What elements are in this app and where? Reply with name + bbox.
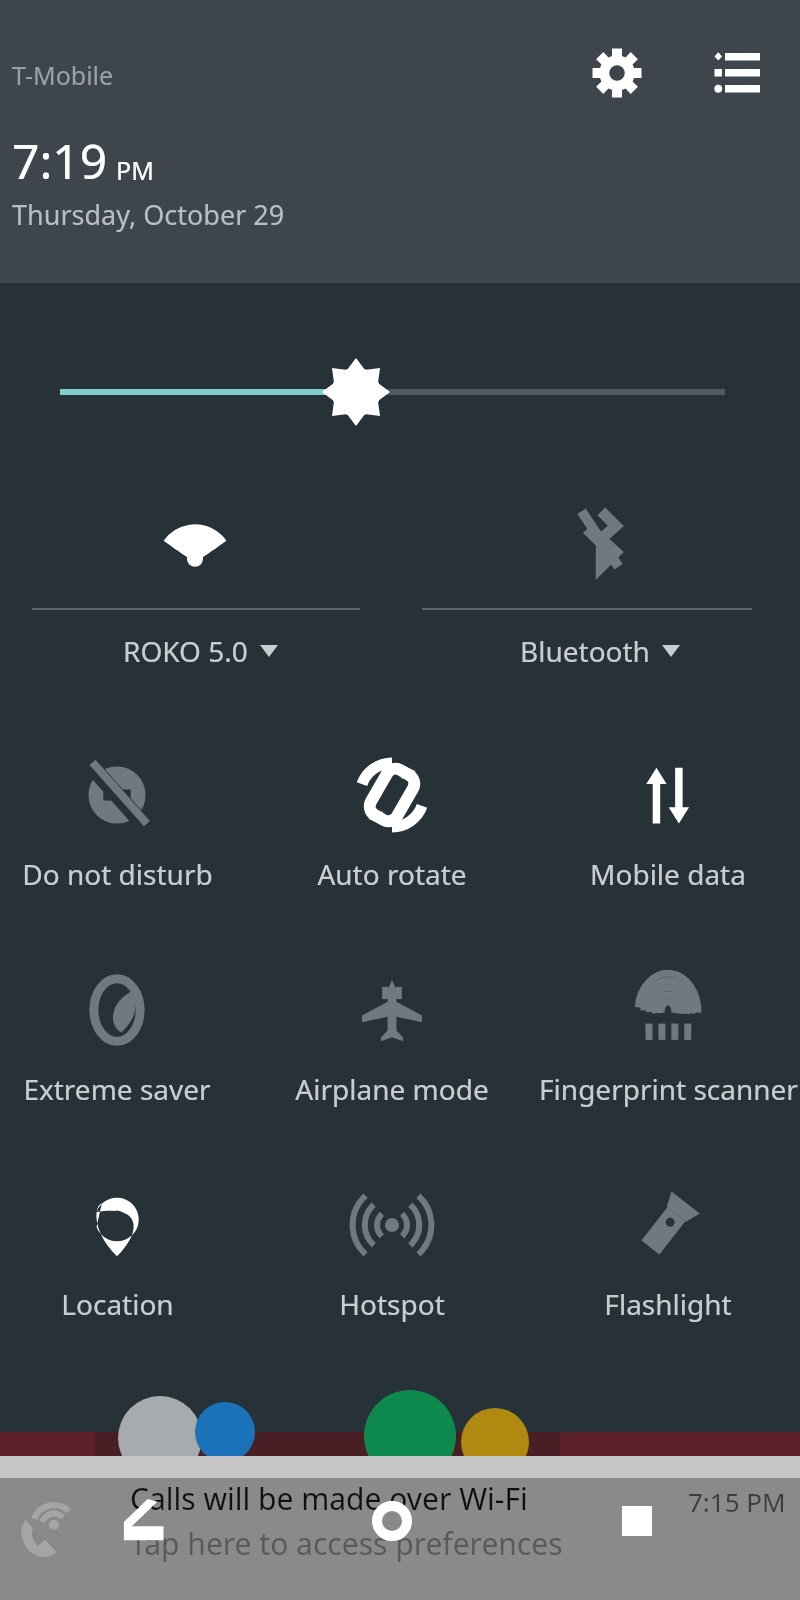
button[interactable]: Fingerprint scanner — [535, 960, 800, 1160]
staticText: Extreme saver — [23, 1070, 211, 1108]
button[interactable]: Home — [357, 1486, 427, 1556]
button[interactable]: Calls will be made over Wi-Fi — [130, 1478, 563, 1564]
button[interactable]: Bluetooth — [400, 480, 800, 680]
staticText: ROKO 5.0 — [123, 632, 248, 670]
staticText: Mobile data — [590, 855, 746, 893]
staticText: Thursday, October 29 — [12, 196, 285, 233]
staticText: Auto rotate — [317, 855, 467, 893]
button[interactable]: Back — [110, 1486, 180, 1556]
staticText: Flashlight — [604, 1285, 732, 1323]
staticText: Airplane mode — [295, 1070, 489, 1108]
button[interactable]: ROKO 5.0 — [0, 480, 400, 680]
staticText: Calls will be made over Wi-Fi — [130, 1478, 528, 1519]
button[interactable]: Flashlight — [535, 1175, 800, 1375]
staticText: 7:15 PM — [688, 1484, 786, 1519]
button[interactable]: Location — [0, 1175, 250, 1375]
staticText: Bluetooth — [520, 632, 650, 670]
staticText: Hotspot — [339, 1285, 445, 1323]
button[interactable]: Do not disturb — [0, 745, 250, 945]
button[interactable]: Brightness — [0, 355, 800, 429]
button[interactable]: Edit tiles — [703, 41, 767, 105]
staticText: T-Mobile — [12, 58, 114, 92]
button[interactable]: Airplane mode — [259, 960, 525, 1160]
button[interactable]: Extreme saver — [0, 960, 250, 1160]
button[interactable]: Recents — [602, 1486, 672, 1556]
staticText: Do not disturb — [22, 855, 213, 893]
staticText: Location — [61, 1285, 174, 1323]
staticText: Fingerprint scanner — [539, 1070, 798, 1108]
staticText: 7:19 — [12, 128, 108, 193]
button[interactable]: Settings — [585, 41, 649, 105]
staticText: PM — [116, 153, 154, 187]
staticText: Tap here to access preferences — [130, 1523, 563, 1564]
button[interactable]: Mobile data — [535, 745, 800, 945]
button[interactable]: Auto rotate — [259, 745, 525, 945]
button[interactable]: Hotspot — [259, 1175, 525, 1375]
